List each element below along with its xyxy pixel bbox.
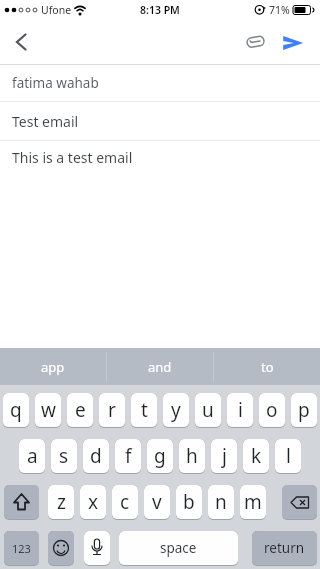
staticText: app: [41, 358, 65, 376]
button[interactable]: w: [35, 393, 61, 428]
button[interactable]: a: [19, 439, 45, 474]
button[interactable]: and: [107, 348, 213, 385]
button[interactable]: d: [83, 439, 109, 474]
staticText: v: [152, 489, 162, 515]
staticText: Ufone: [41, 3, 72, 17]
staticText: q: [10, 397, 22, 423]
button[interactable]: g: [147, 439, 173, 474]
staticText: e: [75, 397, 86, 423]
staticText: z: [57, 489, 66, 515]
button[interactable]: o: [259, 393, 285, 428]
button[interactable]: f: [115, 439, 141, 474]
button[interactable]: n: [208, 485, 234, 520]
staticText: 71%: [269, 3, 290, 17]
button[interactable]: [280, 34, 306, 52]
staticText: m: [244, 489, 262, 515]
button[interactable]: k: [243, 439, 269, 474]
button[interactable]: u: [195, 393, 221, 428]
staticText: s: [59, 443, 69, 469]
button[interactable]: i: [227, 393, 253, 428]
staticText: b: [183, 489, 195, 515]
staticText: l: [286, 443, 291, 469]
button[interactable]: app: [0, 348, 106, 385]
staticText: y: [171, 397, 181, 423]
button[interactable]: return: [252, 531, 317, 566]
button[interactable]: [4, 485, 39, 520]
button[interactable]: [243, 31, 269, 51]
staticText: r: [108, 397, 116, 423]
staticText: p: [298, 397, 310, 423]
button[interactable]: y: [163, 393, 189, 428]
button[interactable]: q: [3, 393, 29, 428]
staticText: return: [264, 539, 305, 557]
button[interactable]: 123: [4, 531, 39, 566]
button[interactable]: l: [275, 439, 301, 474]
button[interactable]: Test email: [0, 102, 320, 140]
staticText: g: [154, 443, 166, 469]
button[interactable]: fatima wahab: [0, 65, 320, 101]
staticText: fatima wahab: [12, 74, 99, 92]
staticText: k: [251, 443, 262, 469]
staticText: a: [27, 443, 38, 469]
button[interactable]: x: [80, 485, 106, 520]
button[interactable]: v: [144, 485, 170, 520]
button[interactable]: [8, 28, 42, 56]
button[interactable]: to: [214, 348, 320, 385]
button[interactable]: p: [291, 393, 317, 428]
staticText: f: [125, 443, 132, 469]
staticText: w: [41, 397, 56, 423]
staticText: t: [141, 397, 148, 423]
button[interactable]: This is a test email: [0, 141, 320, 174]
staticText: 123: [12, 541, 31, 556]
staticText: o: [266, 397, 278, 423]
button[interactable]: t: [131, 393, 157, 428]
button[interactable]: e: [67, 393, 93, 428]
button[interactable]: m: [240, 485, 266, 520]
button[interactable]: c: [112, 485, 138, 520]
staticText: space: [160, 539, 197, 557]
staticText: 8:13 PM: [140, 3, 180, 17]
staticText: n: [215, 489, 227, 515]
button[interactable]: s: [51, 439, 77, 474]
button[interactable]: [282, 485, 317, 520]
staticText: x: [88, 489, 99, 515]
button[interactable]: z: [48, 485, 74, 520]
button[interactable]: [84, 531, 110, 566]
staticText: j: [222, 443, 227, 469]
staticText: to: [261, 358, 274, 376]
staticText: This is a test email: [12, 148, 133, 167]
staticText: h: [186, 443, 198, 469]
staticText: c: [120, 489, 130, 515]
button[interactable]: j: [211, 439, 237, 474]
button[interactable]: [48, 531, 74, 566]
button[interactable]: r: [99, 393, 125, 428]
button[interactable]: space: [119, 531, 238, 566]
staticText: u: [202, 397, 214, 423]
button[interactable]: b: [176, 485, 202, 520]
staticText: and: [148, 358, 172, 376]
staticText: d: [90, 443, 102, 469]
staticText: i: [238, 397, 243, 423]
staticText: Test email: [12, 112, 79, 131]
button[interactable]: h: [179, 439, 205, 474]
